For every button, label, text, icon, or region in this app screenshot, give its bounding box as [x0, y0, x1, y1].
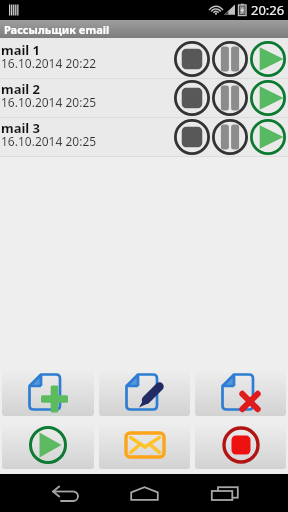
- button[interactable]: mail 1: [0, 40, 288, 78]
- button[interactable]: Pause: [211, 118, 249, 156]
- button[interactable]: Play: [249, 118, 287, 156]
- staticText: 16.10.2014 20:25: [1, 133, 97, 149]
- button[interactable]: Send mail: [99, 421, 190, 469]
- button[interactable]: mail 2: [0, 79, 288, 117]
- button[interactable]: Pause: [211, 79, 249, 117]
- button[interactable]: Home: [109, 474, 179, 512]
- staticText: mail 3: [1, 119, 41, 137]
- button[interactable]: Back: [30, 474, 100, 512]
- staticText: 16.10.2014 20:22: [1, 55, 97, 71]
- button[interactable]: Pause: [211, 40, 249, 78]
- staticText: 16.10.2014 20:25: [1, 94, 97, 110]
- button[interactable]: Stop: [195, 421, 286, 469]
- button[interactable]: New message: [2, 368, 94, 416]
- staticText: mail 1: [1, 41, 41, 59]
- button[interactable]: Recent apps: [190, 474, 260, 512]
- button[interactable]: Delete message: [195, 368, 286, 416]
- button[interactable]: Stop: [173, 118, 211, 156]
- button[interactable]: Stop: [173, 40, 211, 78]
- button[interactable]: mail 3: [0, 118, 288, 156]
- staticText: Рассыльщик email: [4, 22, 110, 37]
- button[interactable]: Stop: [173, 79, 211, 117]
- button[interactable]: Start: [2, 421, 94, 469]
- button[interactable]: Play: [249, 79, 287, 117]
- button[interactable]: Edit message: [99, 368, 190, 416]
- staticText: mail 2: [1, 80, 41, 98]
- button[interactable]: Play: [249, 40, 287, 78]
- staticText: 20:26: [251, 1, 285, 19]
